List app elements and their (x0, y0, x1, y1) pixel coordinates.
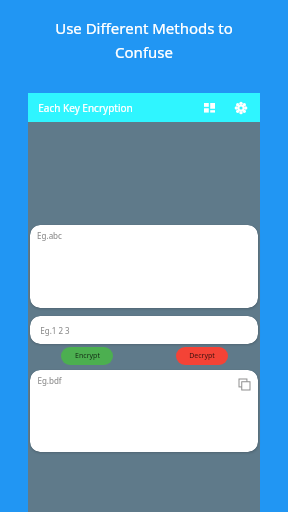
staticText: Eg.abc (37, 230, 62, 241)
button[interactable]: Copy (236, 376, 252, 392)
button[interactable]: Eg.abc (30, 225, 258, 308)
staticText: Decrypt (189, 351, 215, 361)
button[interactable]: Decrypt (176, 347, 228, 365)
staticText: Eg.1 2 3 (40, 325, 70, 336)
button[interactable]: Encrypt (61, 347, 113, 365)
staticText: Use Different Methods to (55, 18, 233, 38)
staticText: Eg.bdf (37, 375, 62, 386)
button[interactable]: Eg.bdf (30, 370, 258, 452)
button[interactable]: Settings (228, 95, 254, 121)
button[interactable]: Dashboard (196, 95, 222, 121)
staticText: Encrypt (75, 351, 100, 361)
button[interactable]: Eg.1 2 3 (30, 316, 258, 344)
staticText: Confuse (115, 42, 173, 62)
staticText: Each Key Encryption (38, 101, 133, 115)
